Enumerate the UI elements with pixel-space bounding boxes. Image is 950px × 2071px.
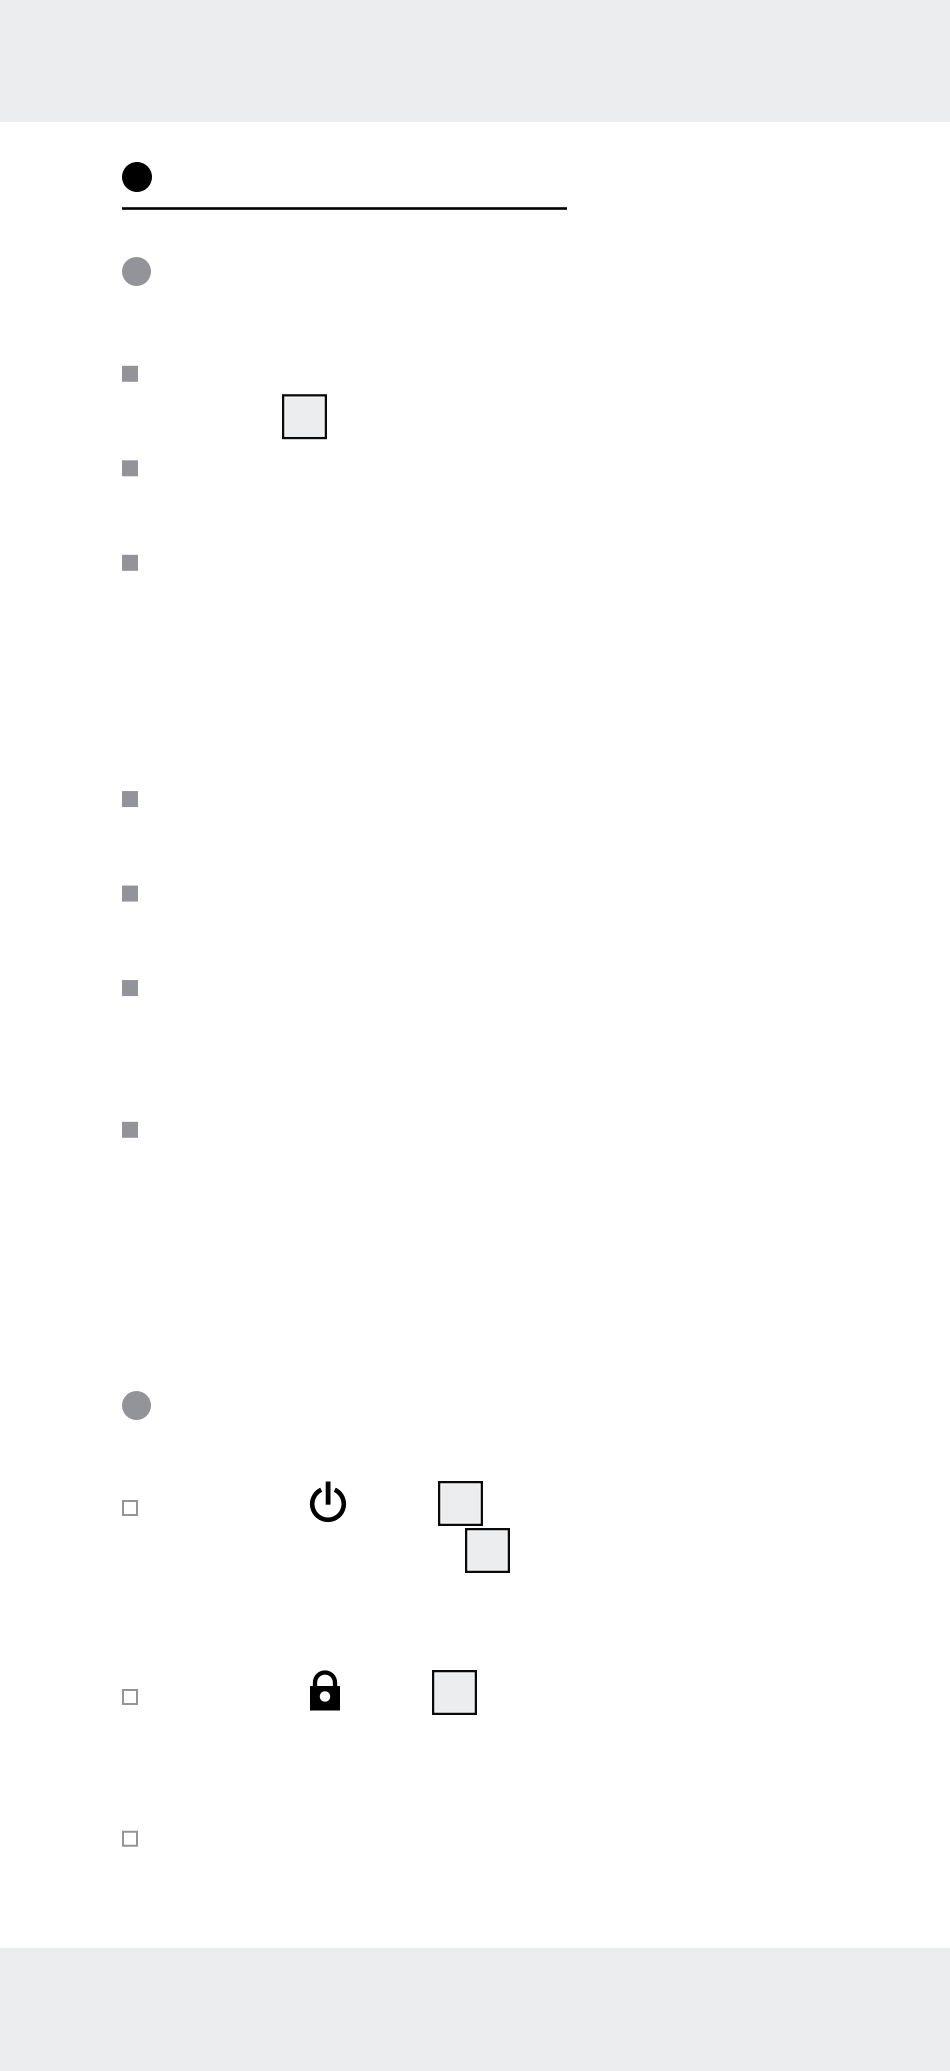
staticText: Sign in again when prompted <box>138 1683 615 1729</box>
staticText: Faster sync on large libraries <box>138 357 605 403</box>
staticText: Restart the device <box>138 1494 432 1540</box>
button[interactable]: Sign in again when prompted <box>122 1683 838 1777</box>
button[interactable]: Back up before installing <box>122 1825 838 1872</box>
button[interactable]: Restart the device <box>122 1494 838 1636</box>
